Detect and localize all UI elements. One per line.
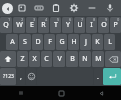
staticText: 5 [57, 17, 60, 22]
button[interactable]: Z [17, 51, 28, 67]
button[interactable]: O [98, 17, 109, 33]
staticText: P [113, 20, 118, 30]
staticText: K [95, 37, 100, 47]
staticText: , [20, 72, 22, 82]
button[interactable]: E [26, 17, 37, 33]
button[interactable]: X [29, 51, 40, 67]
button[interactable]: Emoji [26, 68, 36, 85]
button[interactable]: Q [0, 17, 12, 33]
staticText: A [10, 37, 15, 47]
button[interactable]: , [17, 68, 25, 85]
button[interactable]: A [6, 34, 18, 50]
button[interactable]: H [68, 34, 79, 50]
staticText: L [108, 37, 112, 47]
button[interactable]: Home [41, 86, 81, 100]
button[interactable]: R [38, 17, 49, 33]
button[interactable]: U [74, 17, 85, 33]
staticText: 6 [69, 17, 72, 22]
staticText: T [54, 20, 58, 30]
staticText: 7 [81, 17, 84, 22]
staticText: V [57, 54, 62, 64]
button[interactable]: . [94, 68, 102, 85]
button[interactable]: GIF [30, 0, 47, 16]
button[interactable]: Voice input [101, 0, 119, 16]
staticText: 0 [117, 17, 120, 22]
staticText: U [77, 20, 83, 30]
button[interactable]: B [66, 51, 78, 67]
button[interactable]: K [92, 34, 103, 50]
staticText: D [35, 37, 41, 47]
staticText: 4 [45, 17, 48, 22]
button[interactable]: F [44, 34, 55, 50]
staticText: C [44, 54, 49, 64]
staticText: G [59, 37, 65, 47]
button[interactable]: J [80, 34, 91, 50]
staticText: F [48, 37, 52, 47]
button[interactable]: Stickers [13, 0, 30, 16]
button[interactable]: Back [81, 86, 121, 100]
button[interactable]: Recent apps [0, 86, 41, 100]
button[interactable]: Settings [65, 0, 83, 16]
staticText: ?123 [3, 73, 14, 80]
staticText: Y [66, 20, 70, 30]
button[interactable]: Enter [103, 68, 121, 85]
button[interactable]: Minimize keyboard [83, 0, 101, 16]
staticText: S [23, 37, 27, 47]
staticText: O [101, 20, 107, 30]
staticText: E [30, 20, 34, 30]
button[interactable]: M [92, 51, 104, 67]
button[interactable]: I [86, 17, 97, 33]
staticText: W [16, 20, 23, 30]
staticText: . [97, 72, 99, 82]
button[interactable]: Y [62, 17, 73, 33]
button[interactable]: T [50, 17, 61, 33]
button[interactable]: V [53, 51, 65, 67]
button[interactable]: Shift [0, 51, 16, 67]
staticText: 3 [33, 17, 36, 22]
button[interactable]: L [104, 34, 115, 50]
staticText: I [90, 20, 93, 30]
button[interactable]: S [19, 34, 31, 50]
button[interactable]: P [110, 17, 121, 33]
staticText: B [70, 54, 75, 64]
button[interactable]: W [13, 17, 25, 33]
button[interactable]: Backspace [105, 51, 121, 67]
button[interactable]: G [56, 34, 67, 50]
staticText: X [32, 54, 37, 64]
staticText: R [41, 20, 46, 30]
staticText: J [85, 37, 87, 47]
staticText: H [71, 37, 77, 47]
staticText: 8 [93, 17, 96, 22]
button[interactable]: ?123 [0, 68, 16, 85]
button[interactable]: D [32, 34, 43, 50]
button[interactable]: Clipboard [47, 0, 65, 16]
staticText: M [95, 54, 102, 64]
staticText: Z [20, 54, 25, 64]
staticText: 2 [21, 17, 24, 22]
button[interactable]: C [41, 51, 52, 67]
staticText: 9 [105, 17, 108, 22]
button[interactable]: N [79, 51, 91, 67]
staticText: N [82, 54, 88, 64]
button[interactable]: Back [2, 3, 13, 14]
staticText: 1 [8, 17, 11, 22]
staticText: Q [3, 20, 9, 30]
